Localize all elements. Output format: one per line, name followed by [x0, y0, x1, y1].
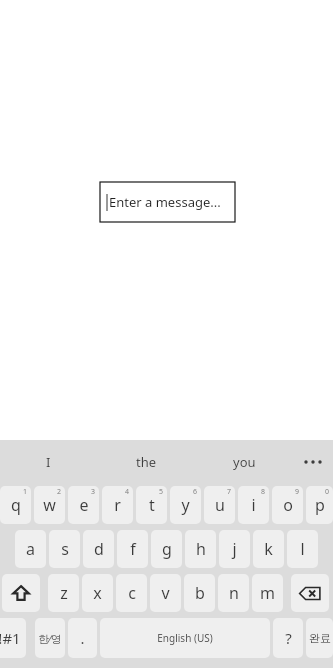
- button[interactable]: t: [136, 486, 167, 524]
- staticText: !#1: [0, 628, 21, 648]
- staticText: 완료: [309, 631, 331, 645]
- staticText: m: [260, 582, 275, 604]
- button[interactable]: k: [253, 530, 284, 568]
- staticText: q: [11, 494, 21, 516]
- staticText: 3: [91, 487, 96, 497]
- staticText: .: [80, 628, 85, 648]
- staticText: z: [60, 582, 68, 604]
- staticText: ?: [285, 628, 292, 648]
- staticText: Enter a message...: [109, 193, 221, 211]
- button[interactable]: a: [15, 530, 46, 568]
- button[interactable]: x: [82, 574, 113, 612]
- staticText: u: [215, 494, 225, 516]
- button[interactable]: d: [83, 530, 114, 568]
- staticText: t: [149, 494, 155, 516]
- staticText: b: [195, 582, 205, 604]
- staticText: 8: [261, 487, 266, 497]
- button[interactable]: Shift: [2, 574, 40, 612]
- button[interactable]: 완료: [306, 618, 333, 658]
- staticText: l: [300, 538, 305, 560]
- button[interactable]: f: [117, 530, 148, 568]
- staticText: s: [61, 538, 69, 560]
- staticText: i: [251, 494, 256, 516]
- button[interactable]: Korean English toggle: [35, 618, 65, 658]
- staticText: you: [233, 453, 256, 471]
- staticText: I: [46, 453, 51, 471]
- button[interactable]: l: [287, 530, 318, 568]
- staticText: 한⁄영: [38, 631, 62, 646]
- staticText: h: [196, 538, 206, 560]
- button[interactable]: w: [34, 486, 65, 524]
- staticText: c: [128, 582, 136, 604]
- button[interactable]: p: [306, 486, 333, 524]
- staticText: 6: [193, 487, 198, 497]
- staticText: 7: [227, 487, 232, 497]
- staticText: 0: [325, 487, 330, 497]
- staticText: x: [93, 582, 102, 604]
- button[interactable]: Backspace: [291, 574, 329, 612]
- button[interactable]: b: [184, 574, 215, 612]
- staticText: j: [232, 538, 237, 560]
- staticText: 9: [295, 487, 300, 497]
- button[interactable]: e: [68, 486, 99, 524]
- button[interactable]: I: [0, 440, 97, 483]
- staticText: 1: [23, 487, 28, 497]
- staticText: y: [181, 494, 190, 516]
- button[interactable]: n: [218, 574, 249, 612]
- button[interactable]: s: [49, 530, 80, 568]
- staticText: f: [130, 538, 136, 560]
- button[interactable]: r: [102, 486, 133, 524]
- button[interactable]: o: [272, 486, 303, 524]
- staticText: p: [315, 494, 325, 516]
- staticText: o: [283, 494, 293, 516]
- button[interactable]: Enter a message...: [100, 182, 235, 222]
- button[interactable]: g: [151, 530, 182, 568]
- staticText: n: [229, 582, 239, 604]
- button[interactable]: u: [204, 486, 235, 524]
- staticText: v: [161, 582, 170, 604]
- staticText: English (US): [157, 631, 213, 645]
- button[interactable]: .: [68, 618, 97, 658]
- staticText: 4: [125, 487, 130, 497]
- staticText: r: [114, 494, 121, 516]
- button[interactable]: ?: [273, 618, 303, 658]
- button[interactable]: you: [195, 440, 293, 483]
- button[interactable]: c: [116, 574, 147, 612]
- staticText: k: [264, 538, 273, 560]
- button[interactable]: English (US): [100, 618, 270, 658]
- staticText: a: [26, 538, 35, 560]
- staticText: d: [94, 538, 104, 560]
- button[interactable]: y: [170, 486, 201, 524]
- staticText: 5: [159, 487, 164, 497]
- button[interactable]: j: [219, 530, 250, 568]
- staticText: e: [79, 494, 89, 516]
- staticText: g: [162, 538, 172, 560]
- button[interactable]: h: [185, 530, 216, 568]
- button[interactable]: i: [238, 486, 269, 524]
- button[interactable]: !#1: [0, 618, 26, 658]
- staticText: the: [136, 453, 157, 471]
- staticText: w: [43, 494, 56, 516]
- staticText: 2: [57, 487, 62, 497]
- button[interactable]: More suggestions: [293, 440, 333, 483]
- button[interactable]: v: [150, 574, 181, 612]
- button[interactable]: m: [252, 574, 283, 612]
- button[interactable]: the: [97, 440, 195, 483]
- button[interactable]: z: [48, 574, 79, 612]
- button[interactable]: q: [0, 486, 31, 524]
